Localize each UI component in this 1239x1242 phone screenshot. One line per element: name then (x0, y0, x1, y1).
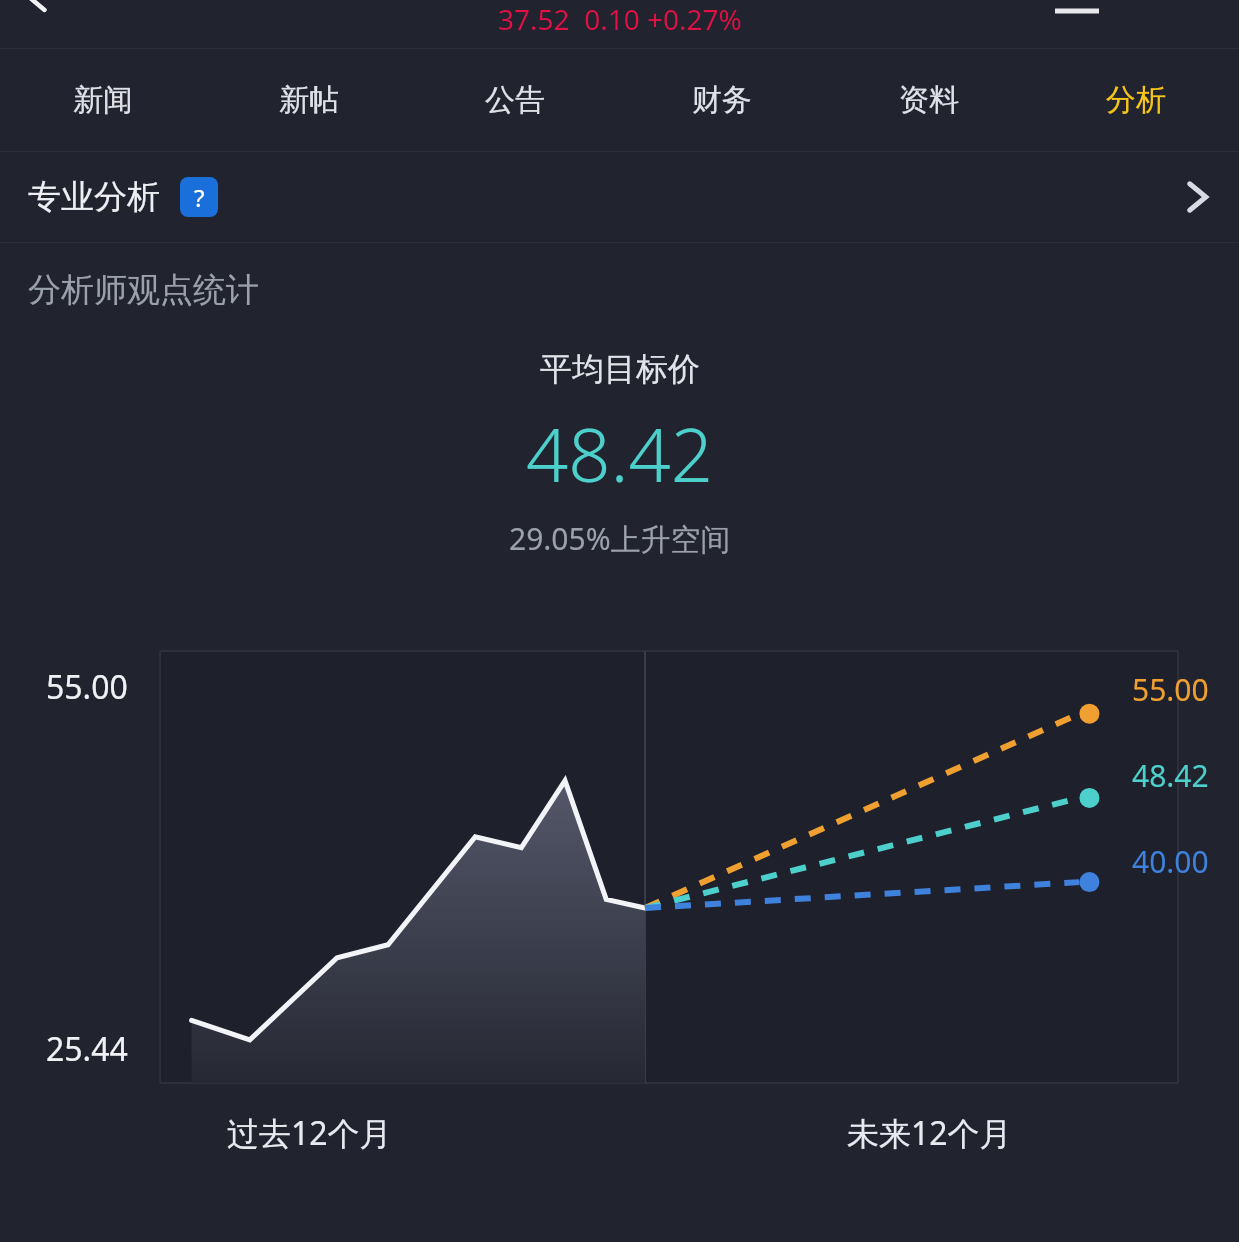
staticText: ? (194, 181, 205, 214)
staticText: 资料 (899, 81, 959, 119)
button[interactable]: 公告 (412, 49, 618, 151)
button[interactable]: Back (18, 0, 52, 16)
button[interactable]: Help (180, 177, 218, 217)
staticText: 公告 (485, 81, 545, 119)
staticText: 平均目标价 (540, 349, 700, 389)
staticText: 29.05%上升空间 (509, 518, 731, 559)
staticText: 40.00 (1132, 841, 1209, 882)
button[interactable]: 专业分析 (0, 152, 1239, 242)
staticText: 25.44 (46, 1027, 128, 1071)
staticText: 分析 (1106, 81, 1166, 119)
staticText: 财务 (692, 81, 752, 119)
staticText: 48.42 (1132, 755, 1209, 796)
staticText: 过去12个月 (227, 1111, 392, 1155)
button[interactable]: 新闻 (0, 49, 206, 151)
button[interactable]: 资料 (825, 49, 1032, 151)
other: More (1185, 177, 1211, 217)
staticText: 55.00 (1132, 669, 1209, 710)
staticText: 未来12个月 (847, 1111, 1012, 1155)
staticText: 新闻 (73, 81, 133, 119)
staticText: 48.42 (526, 403, 714, 504)
button[interactable]: 财务 (618, 49, 825, 151)
staticText: 37.52 0.10 +0.27% (498, 0, 742, 38)
button[interactable]: 新帖 (206, 49, 412, 151)
staticText: 分析师观点统计 (28, 269, 259, 311)
button[interactable]: 分析 (1032, 49, 1239, 151)
staticText: 55.00 (46, 665, 128, 709)
staticText: 专业分析 (28, 176, 160, 218)
staticText: 新帖 (279, 81, 339, 119)
button[interactable]: Minimize (1055, 6, 1099, 16)
